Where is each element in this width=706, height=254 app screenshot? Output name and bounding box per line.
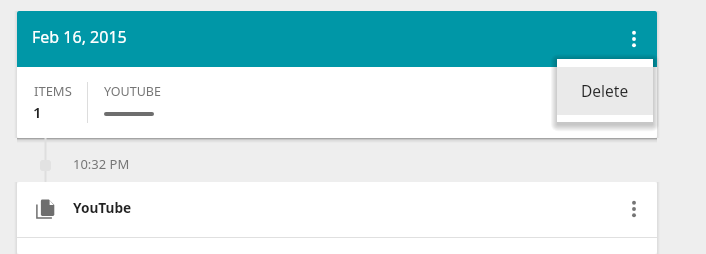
staticText: 1 [33, 102, 42, 122]
staticText: Delete [581, 80, 629, 101]
staticText: YouTube [73, 198, 132, 217]
staticText: Feb 16, 2015 [32, 26, 127, 48]
staticText: 10:32 PM [73, 155, 130, 173]
button[interactable]: Item options [612, 187, 656, 231]
button[interactable]: Delete [557, 67, 653, 115]
staticText: ITEMS [34, 82, 72, 100]
staticText: YOUTUBE [104, 83, 161, 100]
button[interactable]: More options [612, 17, 656, 61]
button[interactable]: YouTube [17, 182, 657, 237]
